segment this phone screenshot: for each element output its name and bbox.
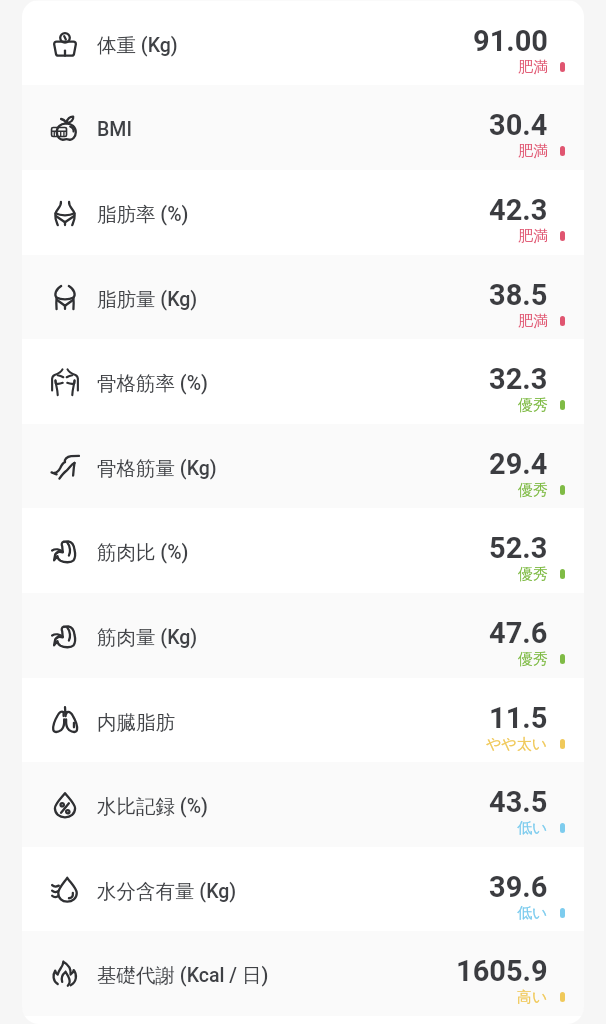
- staticText: 水分含有量 (Kg): [97, 879, 237, 904]
- staticText: 水比記録 (%): [97, 794, 208, 819]
- staticText: 肥満: [518, 142, 548, 161]
- staticText: 30.4: [489, 108, 548, 142]
- button[interactable]: biceps: [22, 593, 584, 678]
- staticText: 高い: [517, 988, 548, 1007]
- staticText: 優秀: [518, 396, 548, 415]
- button[interactable]: drop: [22, 847, 584, 931]
- staticText: 優秀: [518, 650, 548, 669]
- button[interactable]: biceps: [22, 508, 584, 593]
- other: waist: [51, 199, 79, 227]
- staticText: 29.4: [489, 447, 548, 481]
- staticText: 体重 (Kg): [97, 33, 178, 58]
- staticText: 52.3: [489, 531, 548, 565]
- other: droppct: [51, 791, 79, 819]
- other: flame: [51, 960, 79, 988]
- staticText: 筋肉量 (Kg): [97, 625, 198, 650]
- staticText: 39.6: [489, 870, 548, 904]
- button[interactable]: flame: [22, 931, 584, 1016]
- other: hips: [51, 283, 79, 311]
- staticText: 脂肪量 (Kg): [97, 287, 198, 312]
- staticText: 肥満: [518, 312, 548, 331]
- staticText: 優秀: [518, 481, 548, 500]
- staticText: 91.00: [473, 24, 548, 58]
- staticText: やや太い: [486, 735, 548, 754]
- button[interactable]: torso: [22, 339, 584, 424]
- staticText: 38.5: [489, 278, 548, 312]
- other: biceps: [51, 622, 79, 650]
- other: lungs: [51, 706, 79, 734]
- staticText: 骨格筋率 (%): [97, 371, 208, 396]
- button[interactable]: apple: [22, 85, 584, 170]
- staticText: 骨格筋量 (Kg): [97, 456, 217, 481]
- staticText: 筋肉比 (%): [97, 540, 189, 565]
- other: run: [51, 452, 79, 480]
- staticText: 43.5: [489, 785, 548, 819]
- other: torso: [51, 368, 79, 396]
- other: apple: [51, 114, 79, 142]
- staticText: 32.3: [489, 362, 548, 396]
- staticText: BMI: [97, 118, 132, 141]
- button[interactable]: waist: [22, 170, 584, 255]
- button[interactable]: droppct: [22, 762, 584, 847]
- staticText: 47.6: [489, 616, 548, 650]
- staticText: 1605.9: [456, 954, 548, 988]
- staticText: 11.5: [489, 701, 548, 735]
- staticText: 優秀: [518, 565, 548, 584]
- button[interactable]: scale: [22, 1, 584, 85]
- staticText: 脂肪率 (%): [97, 202, 189, 227]
- staticText: 肥満: [518, 227, 548, 246]
- staticText: 内臓脂肪: [97, 710, 175, 735]
- staticText: 基礎代謝 (Kcal / 日): [97, 963, 269, 988]
- button[interactable]: hips: [22, 255, 584, 339]
- other: scale: [51, 29, 79, 57]
- button[interactable]: run: [22, 424, 584, 508]
- staticText: 低い: [517, 819, 548, 838]
- other: biceps: [51, 537, 79, 565]
- staticText: 低い: [517, 904, 548, 923]
- other: drop: [51, 875, 79, 903]
- staticText: 42.3: [489, 193, 548, 227]
- staticText: 肥満: [518, 58, 548, 77]
- button[interactable]: lungs: [22, 678, 584, 762]
